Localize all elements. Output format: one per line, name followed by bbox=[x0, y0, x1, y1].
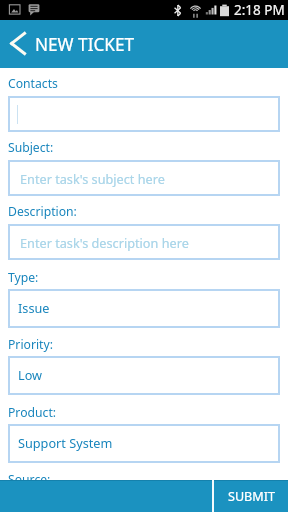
staticText: Support System bbox=[18, 434, 113, 451]
button[interactable]: Low bbox=[8, 356, 280, 395]
staticText: Description: bbox=[8, 203, 77, 220]
button[interactable]: Enter task's subject here bbox=[8, 160, 280, 196]
staticText: Low bbox=[18, 366, 43, 383]
staticText: NEW TICKET bbox=[35, 33, 135, 56]
button[interactable]: Back bbox=[0, 20, 34, 68]
button[interactable]: Enter task's description here bbox=[8, 224, 280, 260]
button[interactable]: Issue bbox=[8, 289, 280, 328]
button[interactable]: Support System bbox=[8, 424, 280, 463]
staticText: 2:18 PM bbox=[234, 1, 285, 19]
staticText: Type: bbox=[8, 269, 39, 286]
staticText: Enter task's description here bbox=[20, 234, 189, 251]
staticText: Source: bbox=[8, 471, 51, 488]
staticText: Contacts bbox=[8, 75, 58, 92]
staticText: Product: bbox=[8, 404, 57, 421]
staticText: Priority: bbox=[8, 336, 53, 353]
button[interactable] bbox=[8, 96, 280, 132]
button[interactable]: SUBMIT bbox=[214, 480, 288, 512]
staticText: Enter task's subject here bbox=[20, 170, 165, 187]
staticText: Issue bbox=[18, 299, 50, 316]
staticText: SUBMIT bbox=[228, 488, 275, 505]
staticText: Subject: bbox=[8, 139, 54, 156]
